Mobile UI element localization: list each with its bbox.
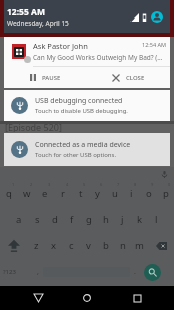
staticText: d xyxy=(52,213,58,226)
staticText: 6 xyxy=(100,182,103,187)
staticText: t xyxy=(79,187,83,200)
button[interactable]: q xyxy=(0,181,18,207)
button[interactable]: z xyxy=(27,233,45,259)
button[interactable]: u xyxy=(106,181,123,207)
staticText: h xyxy=(103,213,109,226)
button[interactable]: h xyxy=(97,207,114,233)
staticText: USB debugging connected xyxy=(35,96,123,106)
staticText: f xyxy=(70,213,74,226)
staticText: 1 xyxy=(12,182,15,187)
staticText: 5 xyxy=(83,182,86,187)
button[interactable]: f xyxy=(63,207,80,233)
button[interactable]: j xyxy=(114,207,131,233)
staticText: p xyxy=(163,187,169,200)
button[interactable]: i xyxy=(123,181,140,207)
button[interactable]: Account xyxy=(151,11,163,23)
button[interactable]: PAUSE xyxy=(4,67,87,88)
staticText: o xyxy=(146,187,152,200)
staticText: 3 xyxy=(48,182,51,187)
button[interactable]: Search xyxy=(144,264,161,281)
button[interactable]: Delete xyxy=(148,233,174,259)
staticText: k xyxy=(137,213,143,226)
button[interactable]: e xyxy=(36,181,54,207)
button[interactable]: o xyxy=(140,181,157,207)
button[interactable]: n xyxy=(114,233,131,259)
button[interactable]: p xyxy=(157,181,174,207)
button[interactable]: t xyxy=(72,181,89,207)
staticText: 12:55 AM xyxy=(7,6,45,18)
staticText: ?123 xyxy=(3,268,16,276)
staticText: r xyxy=(61,187,65,200)
staticText: Connected as a media device xyxy=(35,140,131,150)
button[interactable]: Home xyxy=(75,286,99,310)
staticText: Can My Good Works Outweigh My Bad? (E... xyxy=(33,53,165,62)
staticText: . xyxy=(134,267,136,277)
button[interactable]: l xyxy=(148,207,165,233)
staticText: 12:54 AM xyxy=(142,41,166,48)
button[interactable]: m xyxy=(131,233,148,259)
staticText: Wednesday, April 15 xyxy=(7,19,69,28)
staticText: c xyxy=(69,239,74,252)
staticText: 8 xyxy=(134,182,137,187)
staticText: m xyxy=(135,239,144,252)
staticText: j xyxy=(121,213,124,226)
staticText: b xyxy=(103,239,109,252)
staticText: , xyxy=(37,267,39,277)
button[interactable]: y xyxy=(89,181,106,207)
staticText: a xyxy=(16,213,22,226)
button[interactable]: s xyxy=(28,207,46,233)
button[interactable]: w xyxy=(18,181,36,207)
staticText: PAUSE xyxy=(42,74,61,82)
staticText: Touch to disable USB debugging. xyxy=(35,107,128,115)
button[interactable]: a xyxy=(10,207,28,233)
staticText: 4 xyxy=(66,182,69,187)
staticText: 9 xyxy=(151,182,154,187)
button[interactable]: x xyxy=(45,233,63,259)
button[interactable]: Voice input xyxy=(159,169,170,180)
staticText: y xyxy=(95,187,100,200)
staticText: s xyxy=(35,213,40,226)
staticText: [Episode 520] xyxy=(5,121,62,132)
button[interactable]: g xyxy=(80,207,97,233)
staticText: v xyxy=(86,239,91,252)
staticText: i xyxy=(130,187,133,200)
staticText: x xyxy=(51,239,57,252)
staticText: n xyxy=(120,239,126,252)
button[interactable]: c xyxy=(63,233,80,259)
staticText: l xyxy=(155,213,158,226)
staticText: 2 xyxy=(30,182,33,187)
staticText: CLOSE xyxy=(126,74,145,82)
staticText: Ask Pastor John xyxy=(33,41,88,51)
staticText: 7 xyxy=(117,182,120,187)
button[interactable]: CLOSE xyxy=(87,67,170,88)
button[interactable]: d xyxy=(46,207,63,233)
button[interactable]: r xyxy=(54,181,72,207)
staticText: z xyxy=(34,239,39,252)
staticText: Touch for other USB options. xyxy=(35,151,117,159)
button[interactable]: Connected as a media device xyxy=(4,133,170,166)
button[interactable]: Ask Pastor John xyxy=(4,37,170,88)
staticText: g xyxy=(86,213,92,226)
button[interactable]: k xyxy=(131,207,148,233)
button[interactable]: v xyxy=(80,233,97,259)
staticText: u xyxy=(112,187,118,200)
staticText: e xyxy=(42,187,48,200)
button[interactable]: USB debugging connected xyxy=(4,90,170,121)
staticText: 0 xyxy=(168,182,171,187)
button[interactable]: Recent apps xyxy=(125,286,149,310)
staticText: w xyxy=(23,187,31,200)
button[interactable]: Back xyxy=(26,286,50,310)
button[interactable]: b xyxy=(97,233,114,259)
button[interactable]: Shift xyxy=(0,233,27,259)
staticText: q xyxy=(6,187,12,200)
